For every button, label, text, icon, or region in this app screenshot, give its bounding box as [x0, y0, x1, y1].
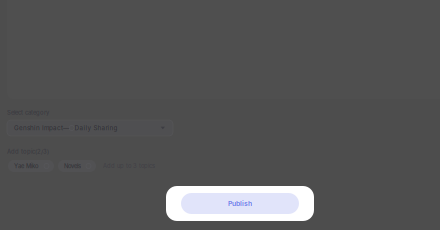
button[interactable]: Genshin Impact— [7, 120, 173, 136]
button[interactable]: Yae Miko [8, 160, 54, 172]
staticText: Genshin Impact— [14, 124, 69, 132]
staticText: Yae Miko [14, 162, 39, 170]
staticText: Select category [7, 109, 49, 116]
staticText: Novels [64, 162, 81, 170]
staticText: Publish [228, 199, 252, 208]
button[interactable]: Novels [58, 160, 96, 172]
staticText: Add up to 3 topics [103, 162, 155, 169]
staticText: Add topic(2/3) [7, 148, 49, 155]
staticText: Daily Sharing [74, 124, 117, 132]
button[interactable]: Publish [166, 186, 314, 221]
